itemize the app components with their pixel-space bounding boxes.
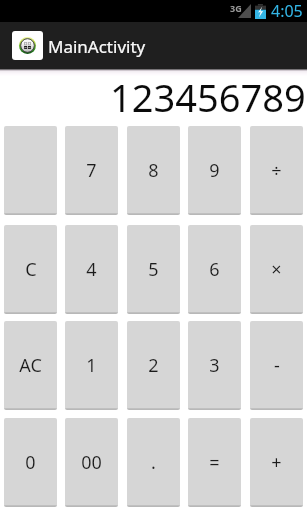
button[interactable]: 6 <box>188 225 241 314</box>
staticText: 7 <box>86 158 97 183</box>
staticText: 2 <box>148 353 159 378</box>
button[interactable]: 0 <box>4 418 57 507</box>
button[interactable]: C <box>4 225 57 314</box>
staticText: 8 <box>148 158 159 183</box>
button[interactable]: MainActivity <box>12 22 146 69</box>
button[interactable]: 9 <box>188 126 241 215</box>
staticText: 3G <box>230 2 242 14</box>
staticText: 0 <box>25 450 36 475</box>
button[interactable]: - <box>250 321 303 410</box>
staticText: 3 <box>209 353 220 378</box>
button[interactable]: 8 <box>127 126 180 215</box>
button[interactable]: 00 <box>65 418 118 507</box>
button[interactable]: 2 <box>127 321 180 410</box>
staticText: 9 <box>209 158 220 183</box>
staticText: = <box>209 450 220 475</box>
staticText: 4 <box>86 257 97 282</box>
button[interactable]: = <box>188 418 241 507</box>
button[interactable]: 1 <box>65 321 118 410</box>
button[interactable]: 7 <box>65 126 118 215</box>
button[interactable]: 5 <box>127 225 180 314</box>
staticText: ÷ <box>271 158 282 183</box>
staticText: + <box>271 450 282 475</box>
staticText: 4:05 <box>271 0 303 22</box>
staticText: × <box>271 257 282 282</box>
staticText: . <box>151 450 156 475</box>
staticText: - <box>274 353 280 378</box>
button[interactable]: ÷ <box>250 126 303 215</box>
button[interactable] <box>4 126 57 215</box>
staticText: C <box>25 257 37 282</box>
staticText: 5 <box>148 257 159 282</box>
button[interactable]: + <box>250 418 303 507</box>
button[interactable]: 3 <box>188 321 241 410</box>
staticText: AC <box>19 353 42 378</box>
staticText: 1 <box>86 353 97 378</box>
button[interactable]: × <box>250 225 303 314</box>
button[interactable]: 4 <box>65 225 118 314</box>
staticText: 6 <box>209 257 220 282</box>
staticText: MainActivity <box>48 35 146 58</box>
staticText: 00 <box>81 450 102 475</box>
button[interactable]: . <box>127 418 180 507</box>
staticText: 123456789 <box>110 71 306 121</box>
button[interactable]: AC <box>4 321 57 410</box>
